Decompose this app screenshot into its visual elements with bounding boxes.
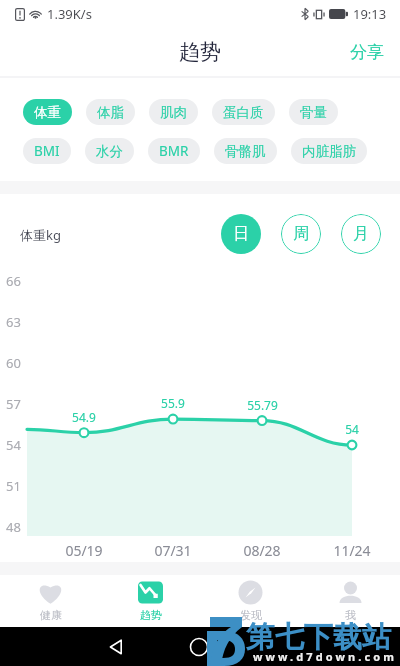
staticText: 分享 bbox=[350, 42, 384, 63]
staticText: 55.9 bbox=[161, 395, 185, 411]
staticText: 健康 bbox=[40, 608, 62, 622]
button[interactable]: 健康 bbox=[0, 575, 100, 627]
button[interactable]: 内脏脂肪 bbox=[291, 138, 367, 164]
staticText: 54.9 bbox=[72, 409, 96, 425]
staticText: 日 bbox=[233, 224, 249, 244]
staticText: 1.39K/s bbox=[47, 5, 92, 23]
staticText: 66 bbox=[6, 272, 21, 290]
staticText: 08/28 bbox=[243, 541, 281, 560]
staticText: 57 bbox=[6, 395, 21, 413]
button[interactable]: 分享 bbox=[334, 32, 400, 73]
staticText: 内脏脂肪 bbox=[302, 143, 356, 160]
button[interactable]: BMI bbox=[23, 138, 71, 164]
button[interactable]: 骨骼肌 bbox=[214, 138, 277, 164]
staticText: 55.79 bbox=[247, 397, 278, 413]
staticText: 月 bbox=[353, 224, 369, 244]
staticText: 体重kg bbox=[20, 226, 61, 244]
staticText: BMI bbox=[34, 142, 60, 160]
button[interactable]: Home bbox=[189, 637, 209, 657]
staticText: 11/24 bbox=[333, 541, 371, 560]
button[interactable]: 骨量 bbox=[289, 99, 338, 125]
staticText: 63 bbox=[6, 313, 21, 331]
staticText: 我 bbox=[345, 608, 356, 622]
staticText: 19:13 bbox=[353, 5, 387, 23]
staticText: 发现 bbox=[240, 608, 262, 622]
staticText: 趋势 bbox=[179, 39, 221, 65]
staticText: 48 bbox=[6, 518, 21, 536]
button[interactable]: 发现 bbox=[200, 575, 300, 627]
staticText: 51 bbox=[6, 477, 21, 495]
staticText: www.d7down.com bbox=[253, 649, 398, 664]
staticText: 体脂 bbox=[97, 104, 124, 121]
staticText: BMR bbox=[159, 142, 189, 160]
button[interactable]: 肌肉 bbox=[149, 99, 198, 125]
staticText: 第七下载站 bbox=[246, 619, 391, 656]
staticText: 骨量 bbox=[300, 104, 327, 121]
button[interactable]: 体脂 bbox=[86, 99, 135, 125]
staticText: 体重 bbox=[34, 104, 61, 121]
staticText: 07/31 bbox=[154, 541, 192, 560]
staticText: 蛋白质 bbox=[223, 104, 264, 121]
staticText: 水分 bbox=[96, 143, 123, 160]
button[interactable]: 体重 bbox=[23, 99, 72, 125]
staticText: 肌肉 bbox=[160, 104, 187, 121]
staticText: 骨骼肌 bbox=[225, 143, 266, 160]
staticText: 周 bbox=[293, 224, 309, 244]
button[interactable]: 周 bbox=[281, 214, 321, 254]
staticText: 趋势 bbox=[140, 608, 162, 622]
button[interactable]: 趋势 bbox=[100, 575, 200, 627]
staticText: 05/19 bbox=[65, 541, 103, 560]
button[interactable]: 蛋白质 bbox=[212, 99, 275, 125]
button[interactable]: 日 bbox=[221, 214, 261, 254]
button[interactable]: 月 bbox=[341, 214, 381, 254]
button[interactable]: 水分 bbox=[85, 138, 134, 164]
button[interactable]: 我 bbox=[300, 575, 400, 627]
button[interactable]: Back bbox=[106, 637, 126, 657]
staticText: 54 bbox=[345, 421, 359, 437]
button[interactable]: BMR bbox=[148, 138, 200, 164]
staticText: 54 bbox=[6, 436, 21, 454]
staticText: 60 bbox=[6, 354, 21, 372]
